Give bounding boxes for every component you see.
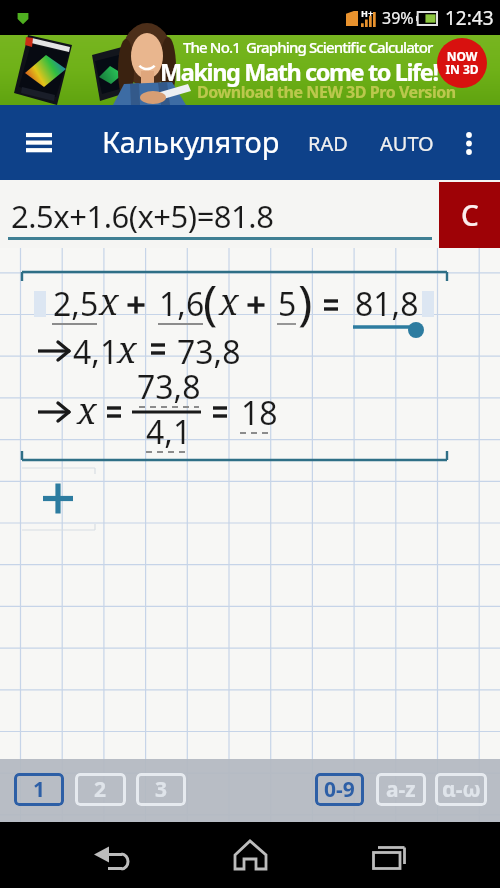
staticText: H+ — [361, 7, 374, 19]
staticText: 12:43 — [445, 5, 494, 31]
button[interactable]: a-z — [376, 773, 426, 806]
button[interactable]: Add new line — [22, 468, 96, 530]
button[interactable]: AUTO — [368, 117, 446, 169]
staticText: Making Math come to Life! — [160, 56, 438, 88]
staticText: a-z — [386, 775, 416, 804]
staticText: 4,1 — [73, 330, 119, 374]
button[interactable]: The No.1 Graphing Scientific Calculator — [0, 35, 500, 105]
staticText: The No.1 Graphing Scientific Calculator — [183, 37, 433, 57]
staticText: 5 — [278, 282, 297, 326]
staticText: 3 — [155, 775, 168, 804]
button[interactable]: α-ω — [435, 773, 487, 806]
staticText: x — [117, 325, 137, 374]
staticText: AUTO — [380, 130, 434, 157]
staticText: 81,8 — [355, 282, 419, 326]
button[interactable]: Menu — [10, 119, 68, 167]
staticText: 2 — [94, 775, 107, 804]
button[interactable]: RAD — [296, 117, 360, 169]
staticText: 39% — [382, 7, 414, 29]
button[interactable]: C — [439, 182, 500, 248]
staticText: x — [99, 277, 119, 326]
button[interactable]: 0-9 — [315, 773, 364, 806]
staticText: ( — [203, 269, 218, 334]
staticText: 73,8 — [137, 365, 201, 409]
staticText: x — [77, 386, 97, 435]
staticText: α-ω — [442, 775, 481, 804]
staticText: 4,1 — [146, 410, 192, 454]
button[interactable]: Back — [70, 830, 150, 882]
staticText: 18 — [241, 391, 278, 435]
staticText: 73,8 — [177, 330, 241, 374]
staticText: Download the NEW 3D Pro Version — [197, 81, 456, 103]
staticText: C — [461, 196, 479, 234]
staticText: 1,6 — [159, 282, 205, 326]
staticText: 2.5x+1.6(x+5)=81.8 — [11, 195, 274, 237]
button[interactable]: 3 — [136, 773, 186, 806]
staticText: 0-9 — [324, 775, 355, 804]
button[interactable]: Home — [210, 830, 290, 882]
button[interactable]: Recent apps — [350, 830, 430, 882]
staticText: RAD — [308, 130, 348, 157]
staticText: ) — [298, 269, 313, 334]
staticText: 2,5 — [53, 282, 99, 326]
button[interactable]: 1 — [14, 773, 64, 806]
staticText: Калькулятор — [102, 122, 280, 161]
button[interactable]: 2 — [75, 773, 126, 806]
staticText: x — [219, 277, 239, 326]
button[interactable]: More options — [446, 118, 492, 168]
staticText: NOW IN 3D — [445, 48, 479, 78]
staticText: 1 — [33, 775, 46, 804]
